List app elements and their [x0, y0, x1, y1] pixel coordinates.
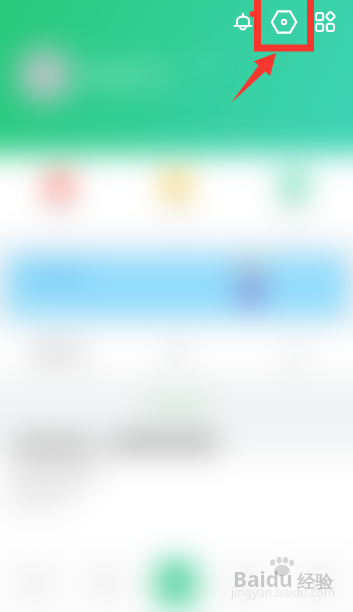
button[interactable]: 收藏	[117, 330, 235, 374]
button[interactable]: Scan code	[266, 4, 302, 40]
button[interactable]: 钱包	[235, 173, 353, 220]
button[interactable]: 活动标题	[5, 254, 348, 318]
staticText: 卡券	[165, 206, 187, 220]
button[interactable]: Tab	[140, 554, 211, 612]
button[interactable]: 卡券	[117, 173, 235, 220]
staticText: 经验	[297, 571, 333, 594]
button[interactable]: Notifications	[225, 4, 261, 40]
staticText: 导问	[226, 120, 252, 136]
staticText: 微信用户名	[85, 65, 170, 86]
button[interactable]: Tab	[282, 554, 353, 612]
button[interactable]	[18, 48, 72, 102]
button[interactable]: 浏览	[235, 330, 353, 374]
staticText: 副标题文字	[23, 294, 83, 309]
staticText: Baidu	[233, 565, 293, 594]
button[interactable]: All services	[307, 4, 343, 40]
button[interactable]: Tab	[70, 554, 140, 612]
staticText: 活动标题	[23, 268, 83, 287]
staticText: 余额	[48, 206, 70, 220]
staticText: jingyan.baidu.com	[231, 584, 335, 600]
staticText: 钱包	[283, 206, 305, 220]
button[interactable]: 余额	[0, 173, 117, 220]
button[interactable]: 我的订单	[0, 330, 117, 374]
button[interactable]: Tab	[211, 554, 282, 612]
